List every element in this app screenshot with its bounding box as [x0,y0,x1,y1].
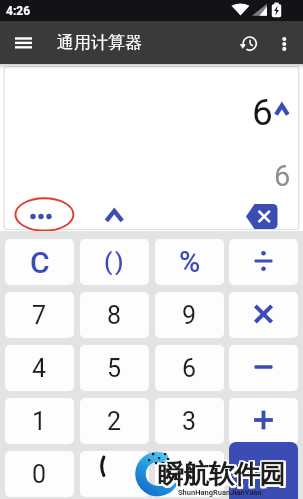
button[interactable] [231,25,267,61]
button[interactable] [98,203,131,229]
button[interactable] [243,201,281,231]
staticText: = [257,458,271,487]
staticText: 瞬航软件园 [160,457,287,490]
button[interactable] [229,239,298,285]
button[interactable] [155,451,224,497]
button[interactable] [229,398,298,444]
staticText: 瞬航软件园 [157,458,284,491]
staticText: C [30,245,50,280]
button[interactable] [80,451,149,497]
button[interactable]: 4 [5,345,74,391]
button[interactable]: 2 [80,398,149,444]
staticText: 5 [107,354,122,383]
button[interactable]: 5 [80,345,149,391]
button[interactable]: 9 [155,292,224,338]
staticText: 瞬航软件园 [157,457,284,490]
button[interactable] [229,345,298,391]
staticText: 瞬航软件园 [158,458,285,491]
button[interactable]: 6 [155,345,224,391]
staticText: 瞬航软件园 [160,458,287,491]
staticText: 0 [32,460,47,489]
staticText: % [179,245,201,279]
button[interactable] [7,26,41,60]
staticText: 2 [107,407,122,436]
staticText: 瞬航软件园 [158,457,285,490]
button[interactable]: 1 [5,398,74,444]
staticText: 1 [32,407,47,436]
button[interactable]: C [5,239,74,285]
staticText: 瞬航软件园 [157,460,284,493]
staticText: ShunHangRuanJianYuan [178,488,262,497]
staticText: 6 [182,354,197,383]
button[interactable]: 7 [5,292,74,338]
staticText: 9 [182,301,197,330]
button[interactable]: = [229,442,298,499]
staticText: 3 [182,407,197,436]
button[interactable]: % [155,239,224,285]
button[interactable] [15,198,74,231]
staticText: 6 [274,159,291,193]
button[interactable] [269,26,303,60]
staticText: 8 [107,301,122,330]
staticText: 通用计算器 [57,32,142,53]
button[interactable]: 3 [155,398,224,444]
button[interactable]: 0 [5,451,74,497]
staticText: 瞬航软件园 [158,460,285,493]
staticText: 瞬航软件园 [160,460,287,493]
staticText: () [104,248,126,276]
staticText: 6 [252,91,273,134]
staticText: 4 [32,354,47,383]
button[interactable]: () [80,239,149,285]
button[interactable]: 8 [80,292,149,338]
staticText: 4:26 [6,4,31,18]
staticText: 7 [32,301,47,330]
button[interactable] [229,292,298,338]
